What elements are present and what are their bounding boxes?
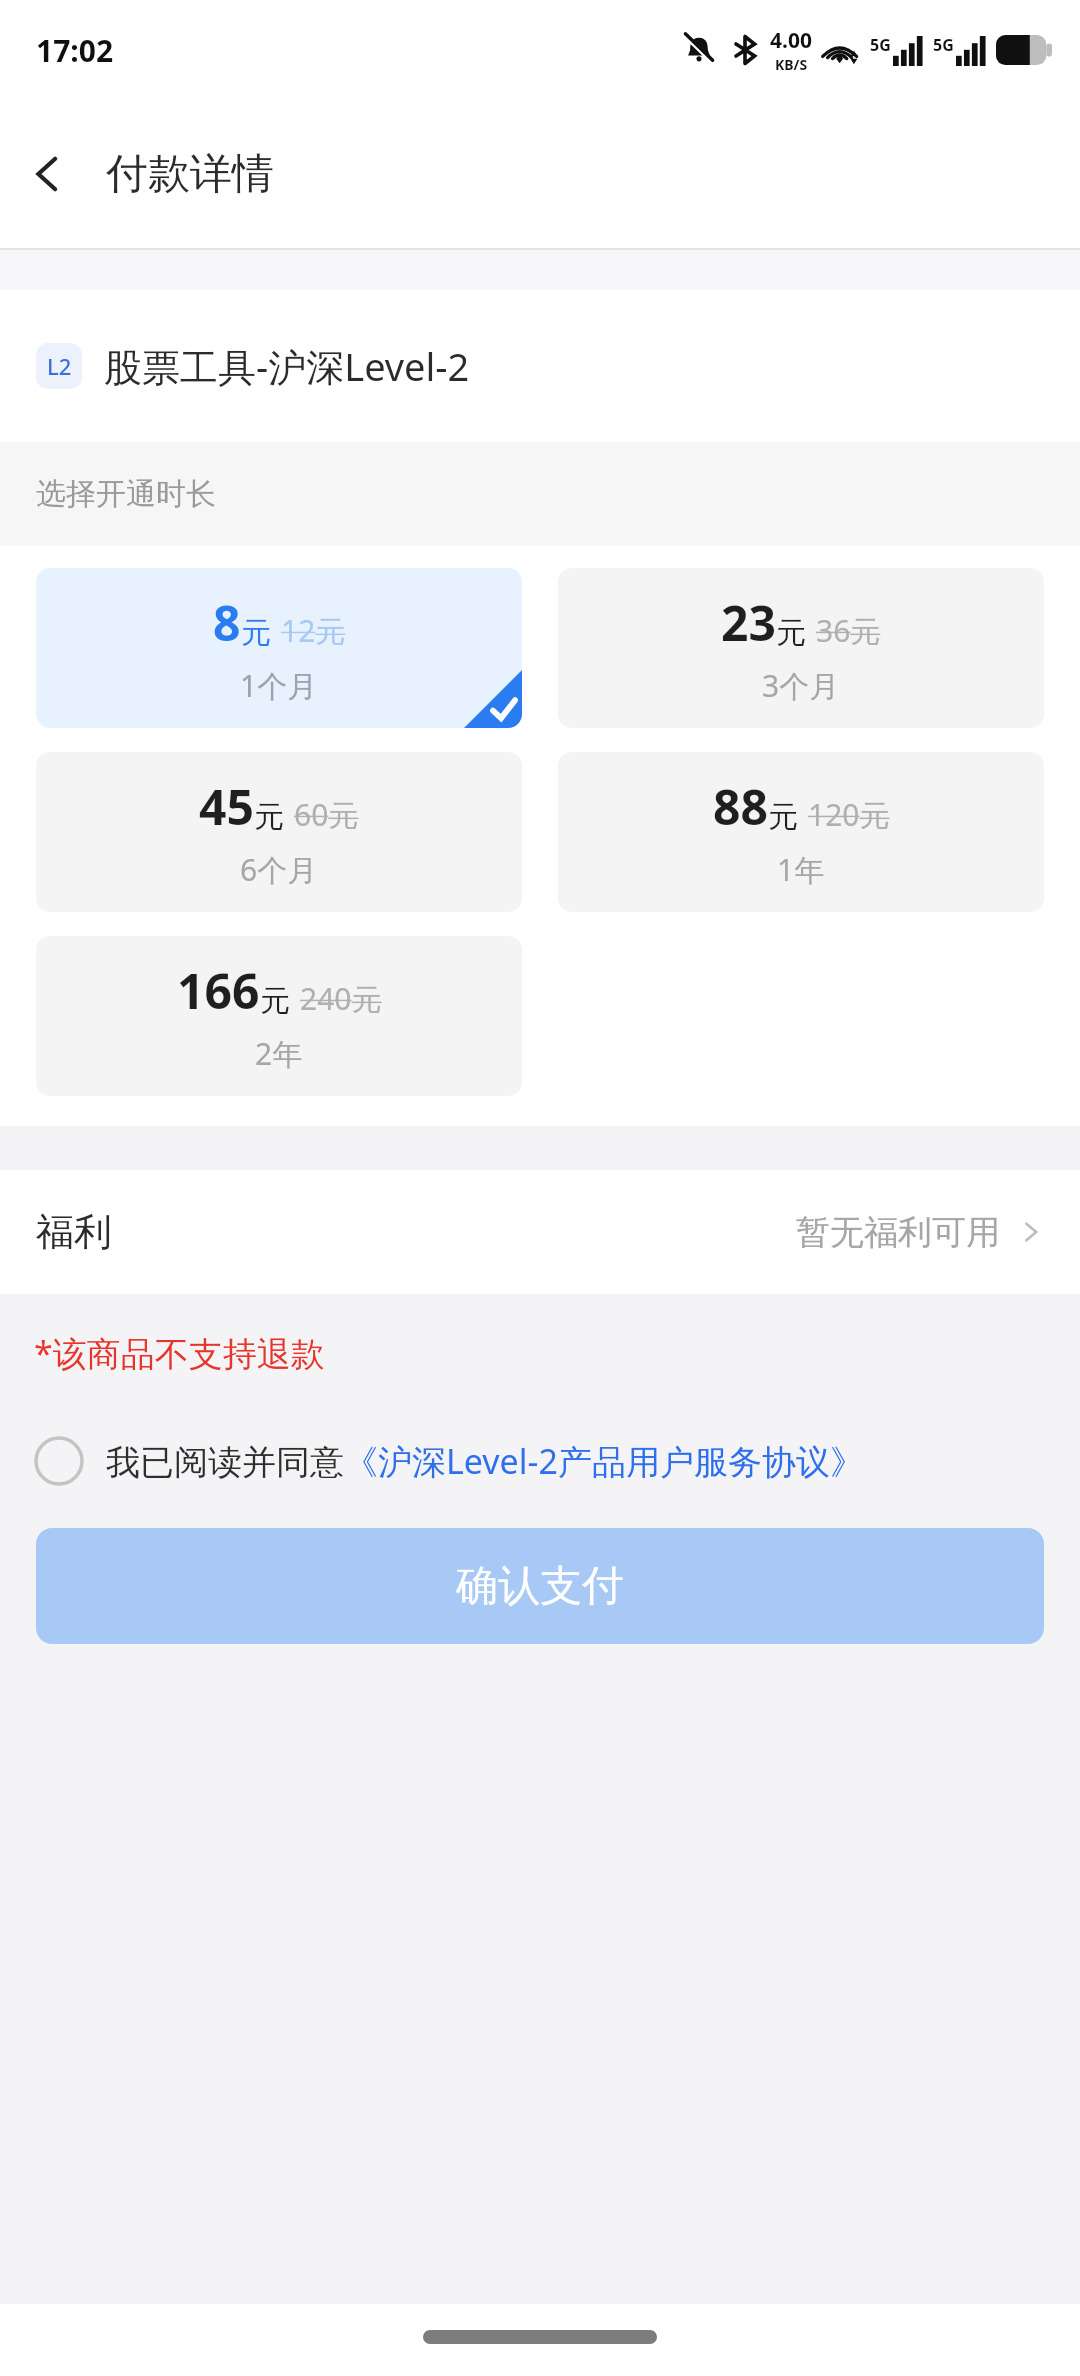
staticText: 4.00 [770,26,812,55]
button[interactable]: 8 [36,568,522,728]
staticText: 确认支付 [456,1560,624,1613]
button[interactable]: 确认支付 [36,1528,1044,1644]
staticText: 元 [776,614,806,652]
button[interactable]: 166 [36,936,522,1096]
button[interactable]: 福利 [0,1170,1080,1294]
button[interactable]: Back [0,126,96,222]
staticText: 5G [870,34,891,56]
staticText: 6个月 [240,849,318,890]
staticText: 36元 [816,610,881,651]
button[interactable]: 我已阅读并同意《沪深Level-2产品用户服务协议》 [0,1428,1080,1494]
button[interactable]: 23 [558,568,1044,728]
staticText: 120元 [808,794,890,835]
staticText: 12元 [281,610,346,651]
staticText: 股票工具-沪深Level-2 [104,340,470,392]
staticText: 元 [260,982,290,1020]
staticText: 我已阅读并同意《沪深Level-2产品用户服务协议》 [106,1438,864,1484]
button[interactable]: 88 [558,752,1044,912]
staticText: KB/S [775,55,808,74]
staticText: 88 [713,774,768,839]
staticText: 17:02 [36,30,114,71]
button[interactable]: L2 [0,290,1080,442]
staticText: 付款详情 [106,148,274,201]
staticText: 暂无福利可用 [796,1211,1000,1254]
staticText: 1年 [777,849,825,890]
staticText: 福利 [36,1208,112,1256]
staticText: 45 [199,774,254,839]
staticText: 8 [213,590,241,655]
button[interactable]: 45 [36,752,522,912]
staticText: 5G [933,34,954,56]
staticText: 元 [254,798,284,836]
staticText: 60元 [294,794,359,835]
staticText: 3个月 [762,665,840,706]
staticText: 选择开通时长 [36,475,216,513]
staticText: 元 [768,798,798,836]
staticText: 166 [177,958,260,1023]
staticText: L2 [47,351,72,381]
staticText: 1个月 [240,665,318,706]
staticText: 240元 [300,978,382,1019]
staticText: *该商品不支持退款 [34,1330,325,1376]
staticText: 2年 [255,1033,303,1074]
staticText: 元 [241,614,271,652]
staticText: 23 [721,590,776,655]
